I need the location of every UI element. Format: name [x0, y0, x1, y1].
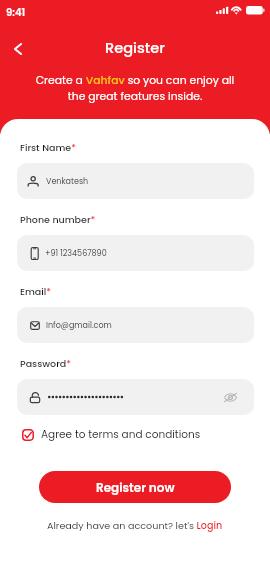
- staticText: Venkatesh: [46, 176, 89, 187]
- staticText: Agree to terms and conditions: [41, 427, 201, 442]
- button[interactable]: +91 1234567890: [17, 235, 254, 271]
- staticText: Info@gmail.com: [46, 320, 112, 331]
- button[interactable]: Back: [7, 38, 29, 60]
- staticText: Phone number*: [20, 213, 96, 226]
- button[interactable]: Show password: [17, 379, 254, 415]
- staticText: Register now: [96, 479, 175, 496]
- button[interactable]: Venkatesh: [17, 163, 254, 199]
- staticText: Register: [105, 38, 165, 58]
- button[interactable]: Register now: [39, 471, 231, 503]
- button[interactable]: Already have an account? let's Login: [47, 519, 223, 532]
- button[interactable]: Show password: [222, 389, 239, 406]
- staticText: First Name*: [20, 141, 76, 154]
- staticText: 9:41: [6, 5, 26, 19]
- staticText: Create a Vahfav so you can enjoy all the…: [28, 73, 242, 104]
- staticText: Password*: [20, 357, 72, 370]
- button[interactable]: Info@gmail.com: [17, 307, 254, 343]
- staticText: Email*: [20, 285, 52, 298]
- button[interactable]: Agree to terms and conditions: [22, 426, 201, 443]
- staticText: +91 1234567890: [45, 248, 107, 259]
